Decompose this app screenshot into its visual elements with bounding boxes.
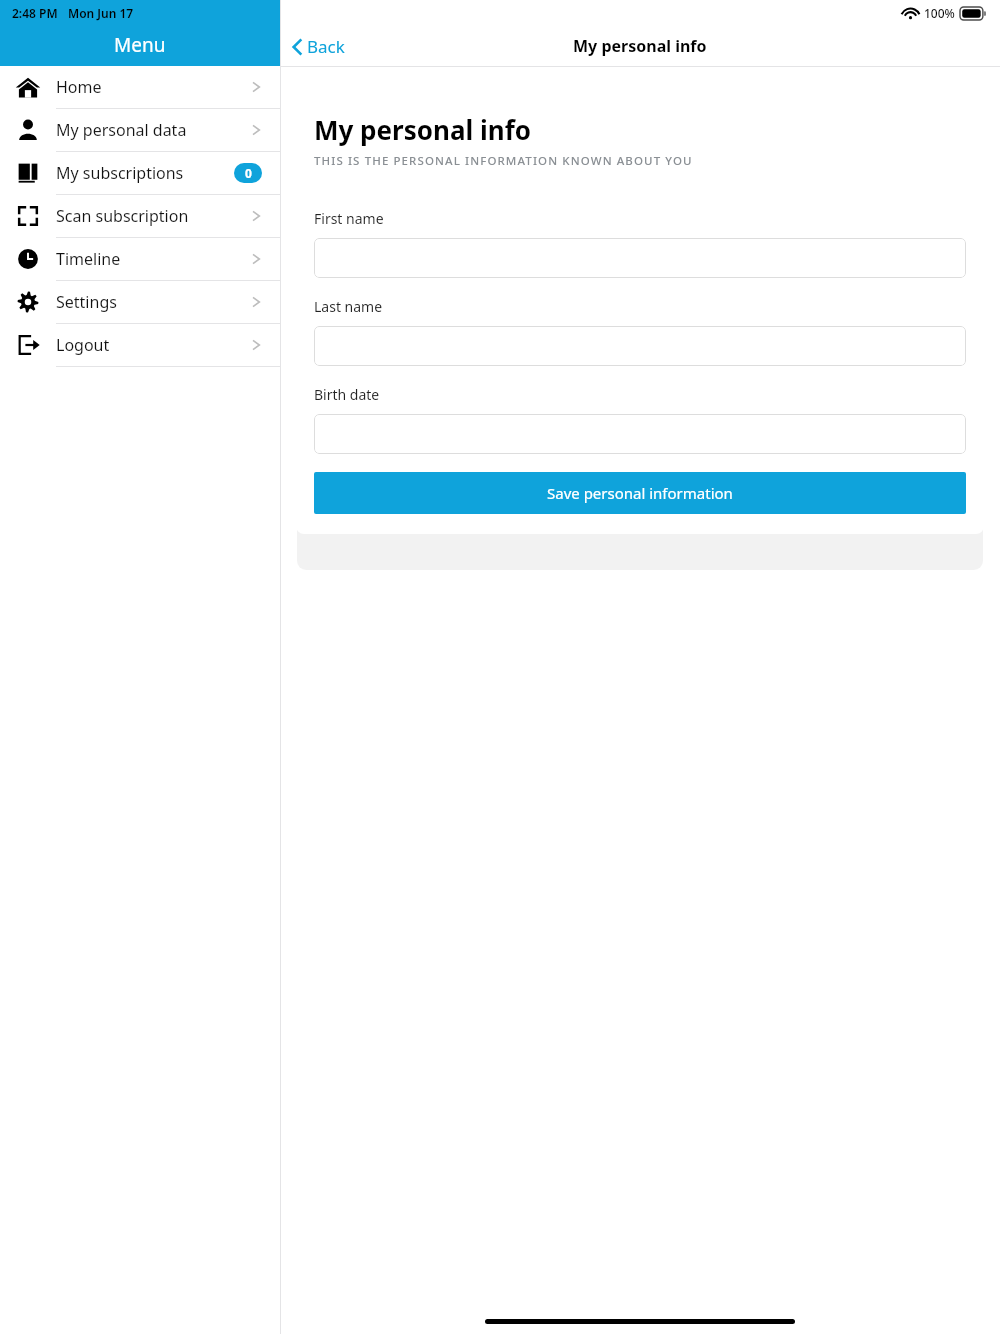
button[interactable]: Timeline xyxy=(0,238,280,280)
staticText: Settings xyxy=(56,291,117,313)
staticText: Save personal information xyxy=(547,483,733,503)
button[interactable]: Settings xyxy=(0,281,280,323)
staticText: My personal info xyxy=(573,35,707,57)
staticText: Mon Jun 17 xyxy=(68,5,134,21)
staticText: 100% xyxy=(924,5,955,21)
staticText: THIS IS THE PERSONAL INFORMATION KNOWN A… xyxy=(314,153,693,169)
staticText: Birth date xyxy=(314,385,380,404)
button[interactable]: Save personal information xyxy=(314,472,966,514)
staticText: Menu xyxy=(114,32,166,58)
button[interactable] xyxy=(314,414,966,454)
staticText: My personal data xyxy=(56,119,187,141)
button[interactable] xyxy=(314,238,966,278)
staticText: My subscriptions xyxy=(56,162,184,184)
button[interactable]: Logout xyxy=(0,324,280,366)
staticText: Back xyxy=(307,35,345,58)
button[interactable]: Back xyxy=(288,31,349,62)
staticText: Timeline xyxy=(56,248,121,270)
button[interactable]: Scan subscription xyxy=(0,195,280,237)
button[interactable]: My subscriptions xyxy=(0,152,280,194)
staticText: Scan subscription xyxy=(56,205,189,227)
staticText: 2:48 PM xyxy=(12,5,58,21)
button[interactable] xyxy=(314,326,966,366)
staticText: Last name xyxy=(314,297,383,316)
button[interactable]: My personal data xyxy=(0,109,280,151)
staticText: First name xyxy=(314,209,384,228)
staticText: 0 xyxy=(245,165,252,181)
staticText: Logout xyxy=(56,334,110,356)
staticText: Home xyxy=(56,76,102,98)
staticText: My personal info xyxy=(314,112,531,147)
button[interactable]: Home xyxy=(0,66,280,108)
